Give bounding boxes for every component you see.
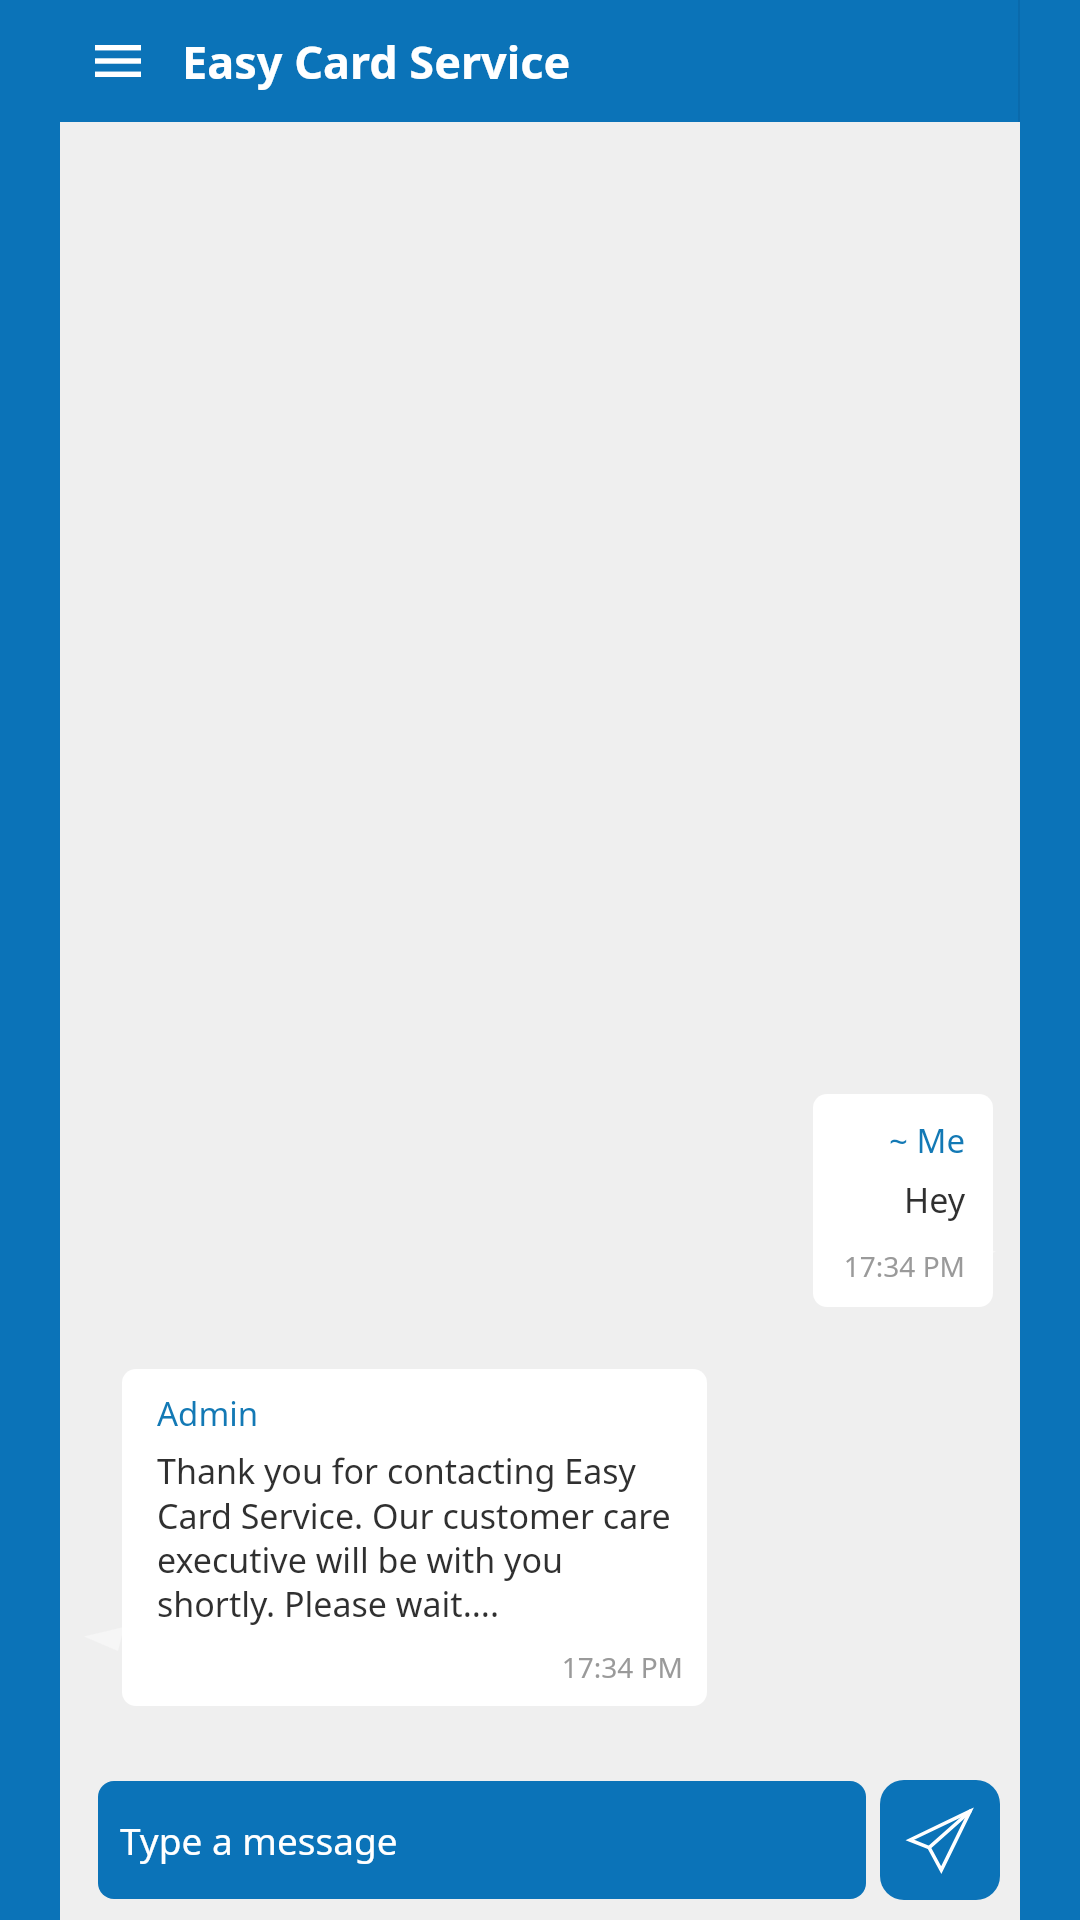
staticText: 17:34 PM	[843, 1247, 965, 1285]
staticText: Type a message	[120, 1815, 398, 1865]
staticText: Hey	[903, 1177, 965, 1223]
button[interactable]: Type a message	[98, 1781, 866, 1899]
button[interactable]: Send message	[880, 1780, 1000, 1900]
staticText: ~ Me	[889, 1118, 965, 1163]
staticText: Thank you for contacting Easy Card Servi…	[157, 1448, 683, 1626]
staticText: Admin	[157, 1391, 259, 1436]
button[interactable]: Open navigation menu	[82, 25, 154, 97]
button[interactable]: Admin	[122, 1369, 707, 1706]
staticText: 17:34 PM	[157, 1648, 683, 1686]
staticText: Easy Card Service	[182, 31, 571, 92]
button[interactable]: ~ Me	[813, 1094, 993, 1307]
